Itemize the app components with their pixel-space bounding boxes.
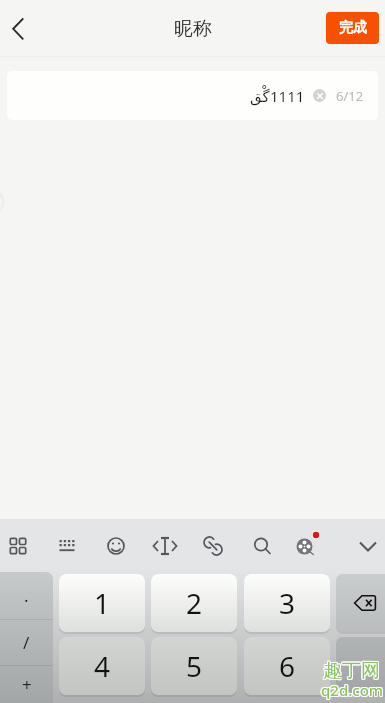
staticText: . <box>24 584 29 607</box>
button[interactable]: . <box>0 572 53 619</box>
button[interactable]: 2 <box>151 574 237 632</box>
staticText: 趣丁网 <box>323 659 380 683</box>
staticText: 趣丁网 <box>322 659 379 683</box>
staticText: 趣丁网 <box>323 660 380 684</box>
button[interactable]: / <box>0 619 53 665</box>
staticText: q2d.com <box>320 680 382 700</box>
staticText: q2d.com <box>320 679 382 699</box>
staticText: / <box>23 631 30 654</box>
staticText: 4 <box>94 647 111 685</box>
button[interactable] <box>336 637 385 695</box>
button[interactable]: Clear text <box>313 89 326 102</box>
button[interactable]: Search <box>241 525 283 567</box>
staticText: 趣丁网 <box>323 658 380 682</box>
staticText: q2d.com <box>321 681 383 701</box>
staticText: q2d.com <box>322 680 384 700</box>
staticText: + <box>22 673 32 696</box>
staticText: 5 <box>186 647 203 685</box>
staticText: q2d.com <box>321 680 383 700</box>
button[interactable]: Link <box>192 525 234 567</box>
staticText: 完成 <box>339 19 367 37</box>
button[interactable]: Emoji <box>95 525 137 567</box>
button[interactable]: Grid <box>0 525 39 567</box>
staticText: 趣丁网 <box>324 660 381 684</box>
staticText: 昵称 <box>174 17 212 41</box>
staticText: 趣丁网 <box>322 658 379 682</box>
staticText: q2d.com <box>322 679 384 699</box>
staticText: 6 <box>279 647 296 685</box>
button[interactable]: 5 <box>151 637 237 695</box>
staticText: q2d.com <box>321 679 383 699</box>
staticText: گْق <box>250 88 270 105</box>
button[interactable]: More <box>284 525 326 567</box>
staticText: 趣丁网 <box>324 658 381 682</box>
button[interactable]: Move cursor <box>144 525 186 567</box>
staticText: 6/12 <box>336 87 364 105</box>
button[interactable]: 1 <box>59 574 145 632</box>
button[interactable]: 4 <box>59 637 145 695</box>
staticText: q2d.com <box>320 681 382 701</box>
staticText: 趣丁网 <box>322 660 379 684</box>
staticText: 2 <box>186 584 203 622</box>
staticText: 趣丁网 <box>324 659 381 683</box>
staticText: 1111 <box>270 86 305 106</box>
button[interactable]: 3 <box>244 574 330 632</box>
staticText: 1 <box>94 584 111 622</box>
button[interactable]: Keyboard <box>46 525 88 567</box>
button[interactable]: Back <box>0 6 44 50</box>
button[interactable]: گْق <box>7 71 378 120</box>
button[interactable]: 完成 <box>326 12 379 44</box>
button[interactable]: Collapse keyboard <box>347 525 385 567</box>
button[interactable]: + <box>0 665 53 703</box>
button[interactable]: 6 <box>244 637 330 695</box>
button[interactable]: Backspace <box>336 574 385 632</box>
staticText: 3 <box>279 584 296 622</box>
staticText: q2d.com <box>322 681 384 701</box>
